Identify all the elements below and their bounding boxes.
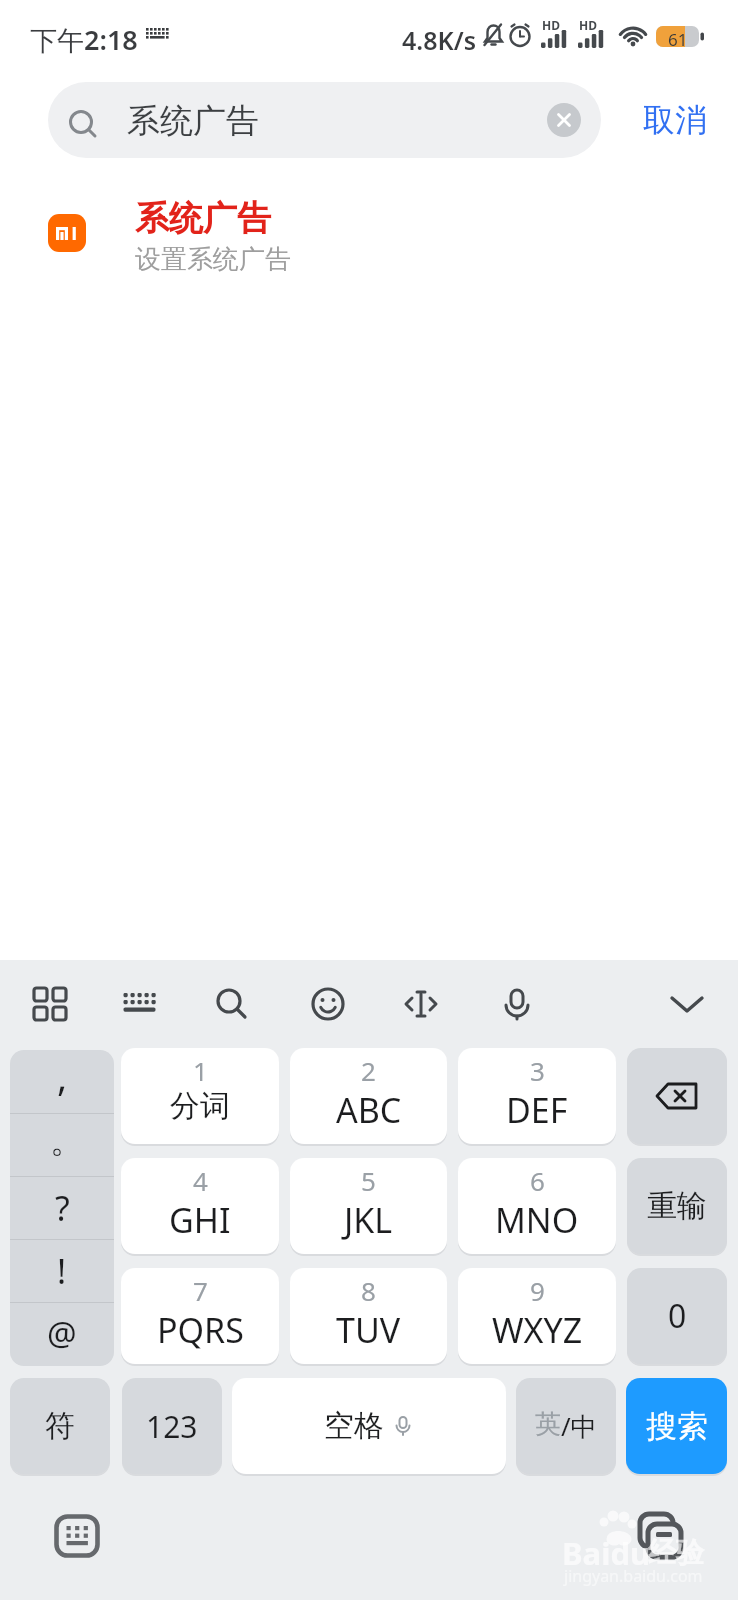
staticText: 重输	[647, 1187, 707, 1225]
button[interactable]	[632, 1508, 690, 1564]
button[interactable]: 7	[121, 1268, 279, 1364]
staticText: 分词	[170, 1087, 230, 1125]
button[interactable]: 符	[10, 1378, 110, 1474]
staticText: 2	[361, 1053, 376, 1088]
staticText: JKL	[344, 1197, 393, 1243]
button[interactable]	[208, 980, 256, 1028]
button[interactable]	[48, 1509, 106, 1563]
button[interactable]	[397, 980, 445, 1028]
staticText: ,	[57, 1050, 68, 1102]
button[interactable]: !	[10, 1239, 114, 1302]
staticText: !	[57, 1248, 67, 1294]
button[interactable]: 3	[458, 1048, 616, 1144]
button[interactable]	[115, 980, 163, 1028]
button[interactable]: 搜索	[626, 1378, 727, 1474]
staticText: @	[47, 1311, 77, 1356]
button[interactable]: 系统广告	[48, 82, 601, 158]
button[interactable]: @	[10, 1302, 114, 1365]
staticText: 。	[50, 1119, 84, 1162]
staticText: Baidu	[562, 1532, 651, 1574]
staticText: 9	[530, 1273, 545, 1308]
staticText: 经验	[648, 1535, 704, 1570]
staticText: 下午2:18	[30, 21, 138, 58]
staticText: 6	[530, 1163, 545, 1198]
button[interactable]: 取消	[630, 95, 720, 145]
button[interactable]	[547, 103, 581, 137]
staticText: 系统广告	[127, 100, 259, 142]
button[interactable]: 8	[290, 1268, 447, 1364]
staticText: ?	[55, 1185, 70, 1231]
button[interactable]: 123	[122, 1378, 222, 1474]
button[interactable]: 0	[627, 1268, 727, 1364]
staticText: jingyan.baidu.com	[564, 1565, 703, 1587]
button[interactable]: 5	[290, 1158, 447, 1254]
button[interactable]: ?	[10, 1176, 114, 1239]
button[interactable]	[627, 1048, 727, 1144]
button[interactable]: 系统广告	[0, 190, 738, 290]
staticText: 符	[45, 1407, 75, 1445]
staticText: 英	[535, 1408, 561, 1441]
button[interactable]: 9	[458, 1268, 616, 1364]
staticText: 4	[193, 1163, 208, 1198]
staticText: 空格	[324, 1407, 384, 1445]
staticText: 4.8K/s	[402, 23, 476, 57]
staticText: 123	[146, 1406, 198, 1447]
button[interactable]	[26, 980, 74, 1028]
button[interactable]: 英	[516, 1378, 616, 1474]
button[interactable]: 重输	[627, 1158, 727, 1254]
staticText: DEF	[506, 1087, 568, 1133]
button[interactable]	[304, 980, 352, 1028]
staticText: 8	[361, 1273, 376, 1308]
staticText: MNO	[495, 1197, 579, 1243]
staticText: 5	[361, 1163, 376, 1198]
staticText: PQRS	[157, 1307, 244, 1353]
button[interactable]: 。	[10, 1113, 114, 1176]
button[interactable]	[493, 980, 541, 1028]
button[interactable]	[663, 980, 711, 1028]
button[interactable]: 4	[121, 1158, 279, 1254]
staticText: /中	[561, 1408, 597, 1444]
button[interactable]: 1	[121, 1048, 279, 1144]
staticText: 取消	[643, 100, 707, 140]
staticText: 7	[193, 1273, 208, 1308]
staticText: WXYZ	[492, 1307, 583, 1353]
staticText: 搜索	[646, 1407, 708, 1446]
staticText: 1	[193, 1053, 208, 1088]
staticText: 设置系统广告	[135, 243, 291, 276]
button[interactable]: ,	[10, 1050, 114, 1113]
button[interactable]: 空格	[232, 1378, 506, 1474]
staticText: HD	[579, 17, 597, 33]
staticText: 系统广告	[135, 197, 271, 240]
staticText: 61	[668, 28, 688, 51]
staticText: TUV	[336, 1307, 401, 1353]
staticText: 3	[530, 1053, 545, 1088]
staticText: 0	[668, 1294, 687, 1338]
button[interactable]: 6	[458, 1158, 616, 1254]
staticText: ABC	[336, 1087, 402, 1133]
button[interactable]: 2	[290, 1048, 447, 1144]
staticText: HD	[542, 17, 560, 33]
staticText: GHI	[169, 1197, 231, 1243]
